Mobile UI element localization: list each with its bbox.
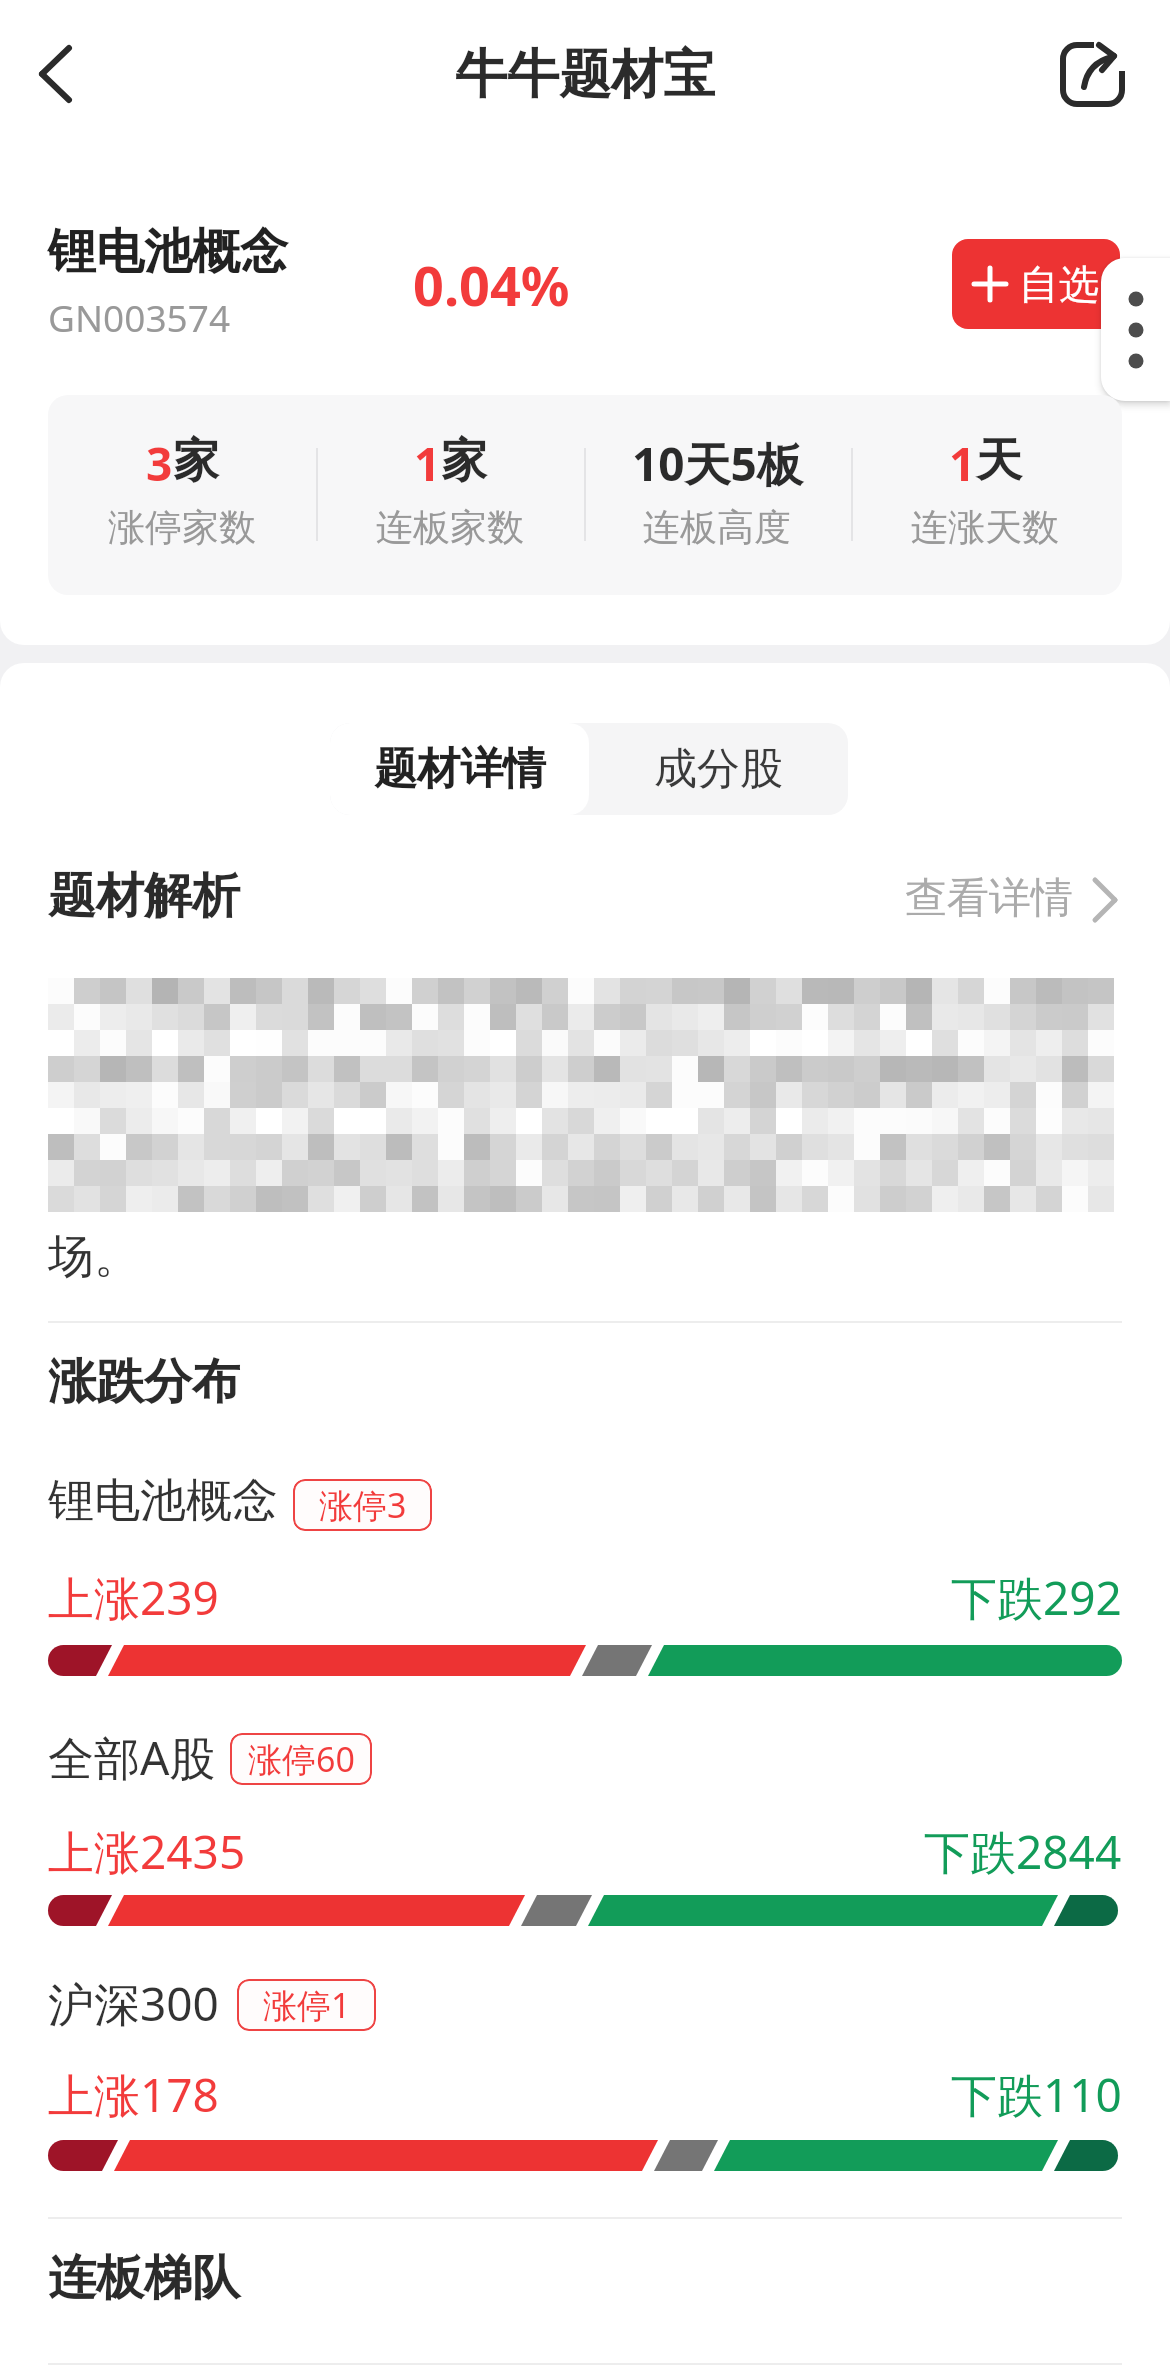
staticText: 题材详情	[374, 742, 546, 796]
button[interactable]: 自选	[952, 239, 1120, 329]
staticText: 0.04%	[413, 248, 570, 322]
staticText: 全部A股	[48, 1726, 216, 1789]
staticText: 涨停家数	[108, 504, 256, 551]
staticText: GN003574	[48, 292, 231, 342]
staticText: 自选	[1019, 259, 1099, 309]
staticText: 连板家数	[376, 504, 524, 551]
staticText: 上涨178	[48, 2063, 219, 2126]
staticText: 10天5板	[632, 432, 803, 495]
button[interactable]	[25, 35, 115, 125]
staticText: 涨停60	[248, 1736, 355, 1782]
staticText: 下跌292	[951, 1566, 1122, 1629]
staticText: 下跌2844	[924, 1820, 1122, 1883]
staticText: 1	[949, 432, 976, 495]
button[interactable]: 查看详情	[860, 860, 1130, 930]
staticText: 家	[173, 432, 219, 490]
staticText: 上涨239	[48, 1566, 219, 1629]
staticText: 场。	[48, 1228, 140, 1286]
staticText: 涨停3	[319, 1482, 407, 1528]
staticText: 连涨天数	[911, 504, 1059, 551]
staticText: 锂电池概念	[48, 1472, 278, 1530]
staticText: 连板高度	[643, 504, 791, 551]
button[interactable]: 成分股	[589, 723, 848, 815]
staticText: 涨跌分布	[48, 1352, 240, 1412]
button[interactable]	[1101, 258, 1170, 401]
staticText: 沪深300	[48, 1972, 219, 2035]
staticText: 上涨2435	[48, 1820, 246, 1883]
staticText: 1	[414, 432, 441, 495]
staticText: 牛牛题材宝	[455, 42, 715, 108]
button[interactable]: 题材详情	[330, 723, 589, 815]
staticText: 天	[976, 432, 1022, 490]
staticText: 下跌110	[951, 2063, 1122, 2126]
staticText: 家	[441, 432, 487, 490]
staticText: 题材解析	[48, 866, 240, 926]
staticText: 连板梯队	[48, 2248, 240, 2308]
staticText: 查看详情	[905, 872, 1073, 925]
button[interactable]	[1045, 30, 1140, 125]
staticText: 涨停1	[263, 1982, 351, 2028]
staticText: 3	[146, 432, 173, 495]
staticText: 成分股	[654, 742, 783, 796]
staticText: 锂电池概念	[48, 222, 288, 282]
